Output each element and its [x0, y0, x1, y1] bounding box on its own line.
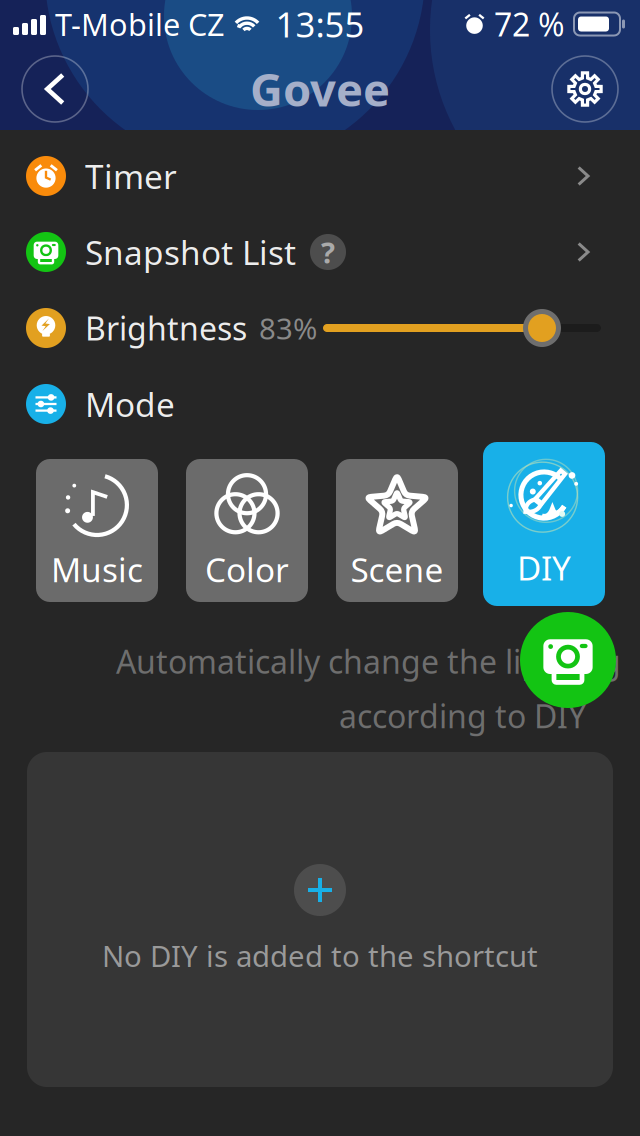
staticText: Scene: [350, 547, 443, 591]
button[interactable]: Color: [186, 459, 308, 602]
staticText: Snapshot List: [85, 230, 296, 274]
button[interactable]: Music: [36, 459, 158, 602]
staticText: 72 %: [494, 3, 565, 45]
staticText: Music: [51, 547, 143, 591]
button[interactable]: Scene: [336, 459, 458, 602]
staticText: T-Mobile CZ: [55, 4, 225, 44]
button[interactable]: Timer: [0, 138, 640, 214]
staticText: DIY: [517, 545, 571, 590]
button[interactable]: Back: [22, 56, 88, 122]
staticText: Automatically change the lighting: [116, 640, 621, 682]
staticText: Timer: [85, 154, 177, 198]
staticText: 13:55: [275, 1, 364, 47]
staticText: Brightness: [85, 307, 247, 349]
staticText: No DIY is added to the shortcut: [102, 936, 538, 975]
staticText: ?: [321, 232, 335, 271]
staticText: Govee: [250, 59, 390, 119]
button[interactable]: Add DIY: [294, 864, 346, 916]
button[interactable]: Mode: [0, 366, 640, 442]
button[interactable]: Snapshot List: [0, 214, 640, 290]
button[interactable]: Settings: [552, 56, 618, 122]
staticText: 83%: [259, 308, 317, 347]
staticText: Mode: [85, 382, 175, 426]
staticText: according to DIY: [339, 694, 586, 737]
staticText: Color: [205, 547, 289, 591]
button[interactable]: DIY: [483, 442, 605, 606]
button[interactable]: Snapshot: [520, 612, 616, 708]
